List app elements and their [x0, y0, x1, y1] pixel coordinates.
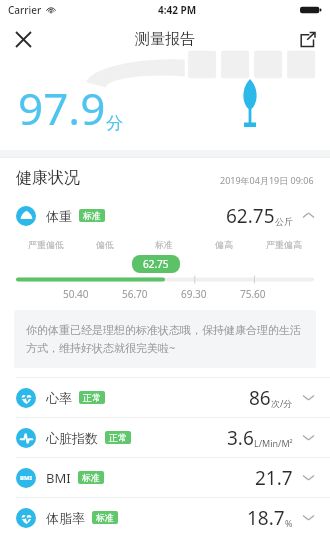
staticText: % [285, 517, 293, 529]
staticText: 75.60 [240, 287, 266, 301]
staticText: L/Min/M² [254, 437, 293, 449]
staticText: 69.30 [181, 287, 207, 301]
staticText: 次/分 [271, 397, 293, 409]
staticText: 正常 [83, 392, 101, 403]
staticText: 偏高 [215, 239, 233, 250]
staticText: 正常 [109, 432, 127, 443]
button[interactable]: 心率 [0, 378, 330, 417]
staticText: 严重偏高 [266, 239, 302, 250]
button[interactable]: 心脏指数 [0, 418, 330, 457]
button[interactable]: Share [292, 24, 322, 54]
staticText: 测量报告 [135, 30, 195, 49]
staticText: 21.7 [255, 465, 293, 491]
staticText: 62.75 [226, 203, 275, 229]
staticText: BMI [20, 474, 32, 482]
staticText: 50.40 [63, 287, 89, 301]
staticText: 公斤 [275, 216, 293, 227]
staticText: 62.75 [143, 257, 169, 271]
staticText: Carrier [8, 3, 42, 17]
staticText: 标准 [83, 210, 101, 221]
button[interactable]: Close [8, 24, 38, 54]
button[interactable]: BMI [0, 458, 330, 497]
staticText: 56.70 [122, 287, 148, 301]
staticText: 标准 [82, 472, 100, 483]
staticText: 你的体重已经是理想的标准状态哦，保持健康合理的生活方式，维持好状态就很完美啦~ [26, 323, 304, 355]
staticText: 3.6 [227, 425, 254, 451]
staticText: 严重偏低 [28, 239, 64, 250]
staticText: 体脂率 [46, 510, 85, 526]
staticText: 4:42 PM [158, 3, 197, 17]
staticText: 体重 [46, 208, 72, 224]
staticText: 健康状况 [16, 168, 80, 188]
staticText: 心率 [46, 390, 72, 406]
staticText: 18.7 [247, 505, 285, 531]
button[interactable]: 体脂率 [0, 498, 330, 537]
button[interactable]: 体重 [0, 196, 330, 235]
staticText: 97.9 [18, 78, 106, 138]
staticText: 2019年04月19日 09:06 [220, 174, 314, 186]
staticText: BMI [46, 469, 71, 487]
staticText: 标准 [96, 512, 114, 523]
staticText: 偏低 [96, 239, 114, 250]
staticText: 心脏指数 [46, 430, 98, 446]
staticText: 分 [106, 113, 123, 134]
staticText: 86 [249, 385, 271, 411]
staticText: 标准 [155, 239, 173, 250]
